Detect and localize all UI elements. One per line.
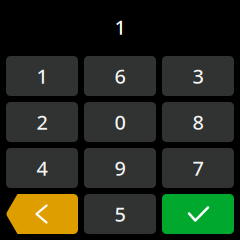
button[interactable]: 8 <box>162 102 234 142</box>
button[interactable]: 4 <box>6 148 78 188</box>
button[interactable]: 7 <box>162 148 234 188</box>
staticText: 7 <box>192 155 203 181</box>
staticText: 1 <box>114 14 125 40</box>
staticText: 2 <box>36 109 47 135</box>
button[interactable]: 2 <box>6 102 78 142</box>
button[interactable]: 3 <box>162 56 234 96</box>
button[interactable]: 9 <box>84 148 156 188</box>
staticText: 1 <box>36 63 47 89</box>
button[interactable]: 0 <box>84 102 156 142</box>
staticText: 5 <box>114 201 125 227</box>
staticText: 8 <box>192 109 203 135</box>
staticText: 6 <box>114 63 125 89</box>
staticText: 4 <box>36 155 47 181</box>
button[interactable]: 5 <box>84 194 156 234</box>
button[interactable]: 1 <box>6 56 78 96</box>
staticText: 3 <box>192 63 203 89</box>
button[interactable]: Confirm <box>162 194 234 234</box>
button[interactable]: 6 <box>84 56 156 96</box>
staticText: 0 <box>114 109 125 135</box>
button[interactable]: Delete <box>6 194 78 234</box>
staticText: 9 <box>114 155 125 181</box>
